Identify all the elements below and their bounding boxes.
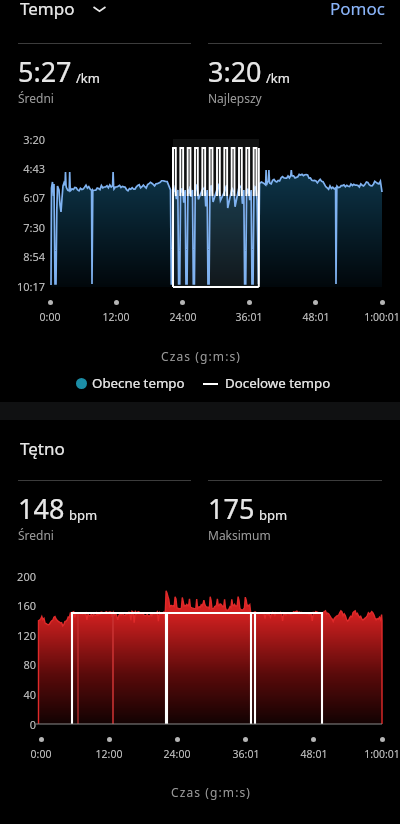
- staticText: 1:00:01: [342, 747, 400, 761]
- staticText: Najlepszy: [208, 90, 262, 106]
- staticText: 6:07: [0, 190, 45, 205]
- staticText: Obecne tempo: [92, 374, 185, 392]
- staticText: Tętno: [20, 437, 65, 460]
- staticText: /km: [266, 69, 290, 87]
- staticText: 7:30: [0, 220, 45, 235]
- staticText: Maksimum: [208, 527, 271, 543]
- staticText: Docelowe tempo: [225, 374, 331, 392]
- staticText: 12:00: [76, 310, 156, 324]
- staticText: 48:01: [274, 747, 354, 761]
- staticText: 3:20: [0, 132, 45, 147]
- staticText: 200: [0, 569, 36, 584]
- staticText: 175: [208, 490, 255, 527]
- staticText: 24:00: [137, 747, 217, 761]
- staticText: bpm: [69, 506, 98, 524]
- staticText: 3:20: [208, 53, 262, 90]
- staticText: 40: [0, 687, 36, 702]
- staticText: 10:17: [0, 279, 45, 294]
- staticText: /km: [76, 69, 100, 87]
- staticText: 4:43: [0, 161, 45, 176]
- staticText: bpm: [259, 506, 288, 524]
- staticText: 1:00:01: [342, 310, 400, 324]
- staticText: Średni: [18, 527, 54, 543]
- staticText: 0: [0, 717, 36, 732]
- button[interactable]: Pomoc: [330, 0, 400, 20]
- staticText: 120: [0, 628, 36, 643]
- staticText: 36:01: [209, 310, 289, 324]
- staticText: 148: [18, 490, 65, 527]
- staticText: 36:01: [206, 747, 286, 761]
- staticText: Średni: [18, 90, 54, 106]
- staticText: Tempo: [20, 0, 75, 20]
- staticText: 48:01: [276, 310, 356, 324]
- staticText: 80: [0, 657, 36, 672]
- staticText: 5:27: [18, 53, 72, 90]
- button[interactable]: Tempo: [0, 0, 119, 20]
- staticText: Pomoc: [330, 0, 385, 20]
- staticText: Czas (g:m:s): [11, 784, 400, 800]
- staticText: Czas (g:m:s): [1, 348, 400, 364]
- staticText: 0:00: [10, 310, 90, 324]
- staticText: 24:00: [143, 310, 223, 324]
- staticText: 160: [0, 598, 36, 613]
- staticText: 8:54: [0, 249, 45, 264]
- staticText: 0:00: [1, 747, 81, 761]
- staticText: 12:00: [69, 747, 149, 761]
